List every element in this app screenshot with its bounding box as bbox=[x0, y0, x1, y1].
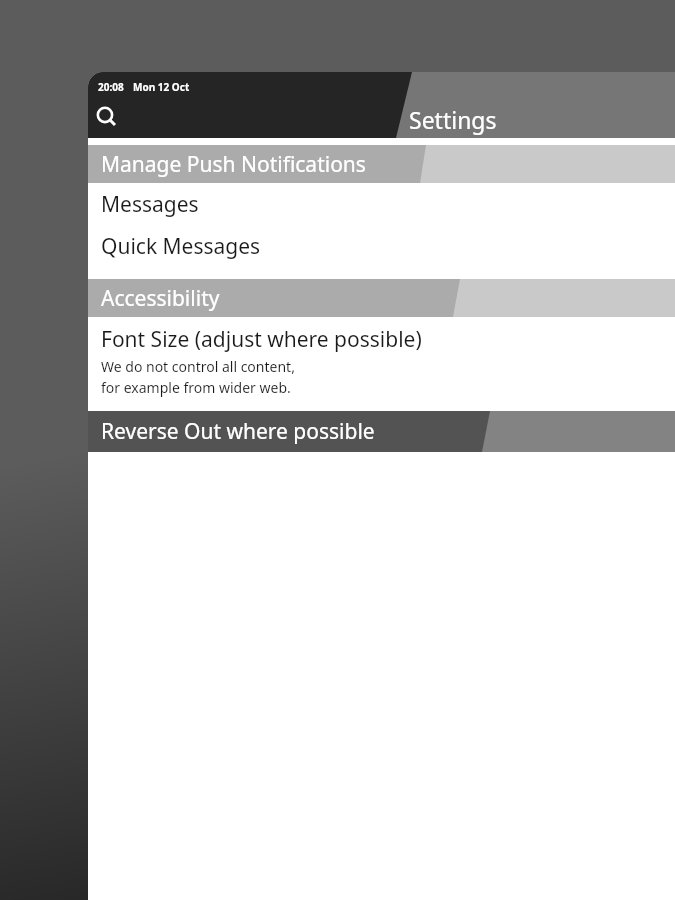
staticText: for example from wider web. bbox=[101, 378, 291, 397]
staticText: Settings bbox=[409, 104, 497, 135]
staticText: We do not control all content, bbox=[101, 357, 295, 376]
staticText: Reverse Out where possible bbox=[101, 417, 375, 446]
button[interactable]: Manage Push Notifications bbox=[88, 145, 675, 183]
button[interactable]: Quick Messages bbox=[88, 225, 675, 267]
button[interactable]: Messages bbox=[88, 183, 675, 225]
button[interactable]: Search bbox=[90, 100, 124, 134]
staticText: Messages bbox=[101, 190, 199, 219]
staticText: Mon 12 Oct bbox=[133, 80, 190, 94]
button[interactable]: Reverse Out where possible bbox=[88, 411, 675, 452]
button[interactable]: Accessibility bbox=[88, 279, 675, 317]
staticText: 20:08 bbox=[98, 80, 124, 94]
staticText: Font Size (adjust where possible) bbox=[101, 325, 422, 354]
staticText: Accessibility bbox=[101, 284, 220, 313]
staticText: Manage Push Notifications bbox=[101, 150, 366, 179]
button[interactable]: Font Size (adjust where possible) bbox=[88, 317, 675, 411]
staticText: Quick Messages bbox=[101, 232, 261, 261]
